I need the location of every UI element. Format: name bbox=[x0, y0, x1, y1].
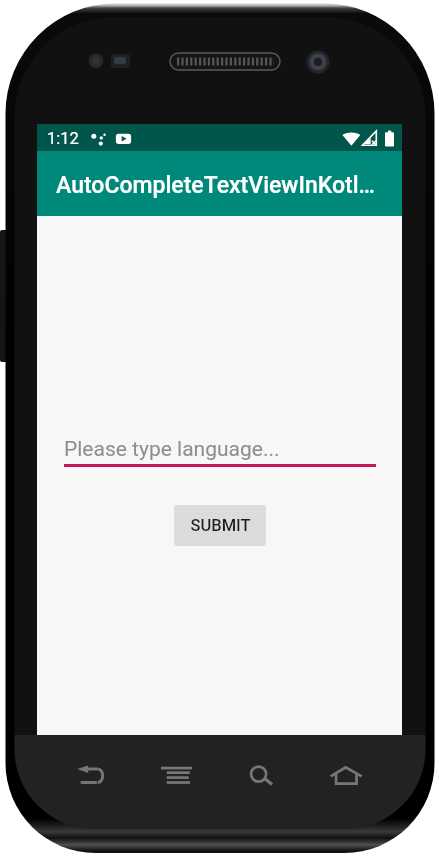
staticText: Please type language... bbox=[64, 437, 280, 462]
button[interactable]: Home bbox=[303, 752, 388, 798]
staticText: SUBMIT bbox=[190, 516, 251, 535]
button[interactable]: Menu bbox=[133, 752, 218, 798]
staticText: AutoCompleteTextViewInKotl… bbox=[56, 172, 375, 199]
button[interactable]: SUBMIT bbox=[174, 505, 266, 546]
button[interactable]: Please type language... bbox=[64, 437, 376, 467]
button[interactable]: Search bbox=[218, 752, 303, 798]
staticText: 1:12 bbox=[47, 129, 79, 148]
button[interactable]: Back bbox=[48, 752, 133, 798]
